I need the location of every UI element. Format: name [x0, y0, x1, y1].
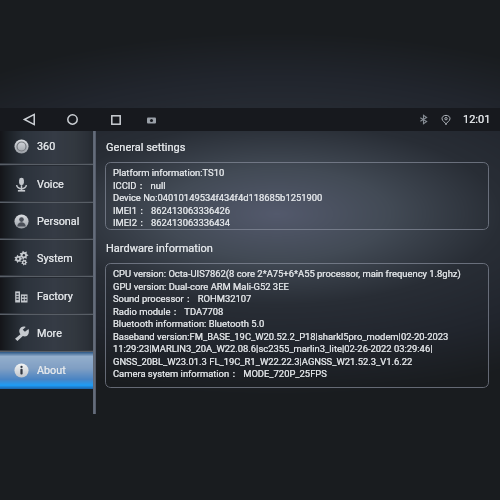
button[interactable]: 360 [0, 128, 93, 165]
staticText: IMEI2： 862413063336434 [113, 217, 231, 229]
button[interactable]: About [0, 352, 93, 389]
staticText: 11:29:23|MARLIN3_20A_W22.08.6|sc2355_mar… [113, 343, 433, 354]
button[interactable]: Personal [0, 203, 93, 240]
staticText: GPU version: Dual-core ARM Mali-G52 3EE [113, 281, 289, 292]
staticText: Platform information:TS10 [113, 167, 225, 178]
button[interactable]: Home [61, 108, 84, 131]
staticText: Sound processor： ROHM32107 [113, 293, 252, 305]
staticText: About [37, 364, 66, 377]
button[interactable]: More [0, 315, 93, 352]
staticText: System [37, 252, 73, 265]
staticText: General settings [106, 141, 186, 154]
staticText: Device No:04010149534f434f4d118685b12519… [113, 192, 323, 203]
staticText: GNSS_20BL_W23.01.3 FL_19C_R1_W22.22.3|AG… [113, 356, 413, 367]
button[interactable]: Voice [0, 166, 93, 203]
button[interactable]: System [0, 240, 93, 277]
button[interactable]: Back [18, 108, 41, 131]
staticText: 360 [37, 140, 56, 153]
staticText: Factory [37, 290, 73, 303]
staticText: 12:01 [463, 113, 491, 126]
button[interactable]: Recent apps [104, 108, 127, 131]
staticText: Camera system information： MODE_720P_25F… [113, 368, 327, 380]
staticText: CPU version: Octa-UIS7862(8 core 2*A75+6… [113, 268, 461, 279]
staticText: Radio module： TDA7708 [113, 306, 224, 318]
button[interactable]: Factory [0, 278, 93, 315]
staticText: Voice [37, 178, 64, 191]
staticText: Baseband version:FM_BASE_19C_W20.52.2_P1… [113, 331, 449, 342]
staticText: ICCID： null [113, 180, 166, 192]
staticText: More [37, 327, 62, 340]
staticText: Bluetooth information: Bluetooth 5.0 [113, 318, 265, 329]
staticText: Personal [37, 215, 80, 228]
button[interactable]: Screenshot [141, 110, 161, 130]
staticText: IMEI1： 862413063336426 [113, 205, 231, 217]
staticText: Hardware information [106, 242, 213, 255]
